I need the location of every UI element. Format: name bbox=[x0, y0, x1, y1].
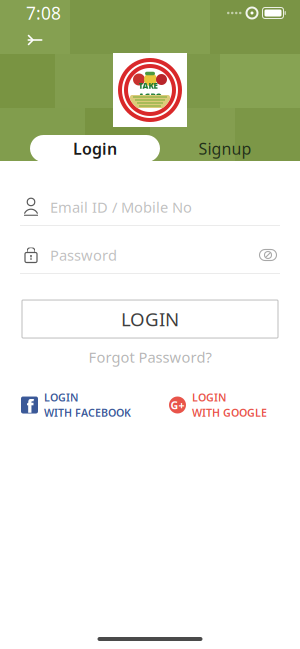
button[interactable]: G+ bbox=[169, 390, 279, 420]
button[interactable]: Show password bbox=[256, 244, 280, 266]
button[interactable]: LOGIN bbox=[22, 300, 278, 338]
button[interactable]: Back bbox=[18, 27, 52, 53]
staticText: G+ bbox=[170, 398, 184, 412]
button[interactable]: f bbox=[21, 390, 141, 420]
staticText: Email ID / Mobile No bbox=[50, 197, 192, 217]
staticText: Signup bbox=[198, 138, 251, 159]
staticText: LOGIN bbox=[192, 390, 226, 404]
staticText: 7:08 bbox=[26, 1, 61, 24]
staticText: LOGIN bbox=[44, 390, 78, 404]
staticText: f bbox=[26, 394, 33, 417]
staticText: LOGIN bbox=[121, 307, 179, 331]
staticText: Forgot Password? bbox=[88, 347, 211, 367]
staticText: TAKE AGRO bbox=[138, 80, 161, 102]
staticText: WITH FACEBOOK bbox=[44, 405, 131, 420]
staticText: WITH GOOGLE bbox=[192, 405, 267, 420]
button[interactable]: Forgot Password? bbox=[88, 346, 211, 368]
button[interactable]: Login bbox=[30, 135, 160, 162]
button[interactable]: Signup bbox=[160, 135, 290, 162]
staticText: Password bbox=[50, 245, 117, 265]
staticText: Login bbox=[73, 138, 117, 159]
